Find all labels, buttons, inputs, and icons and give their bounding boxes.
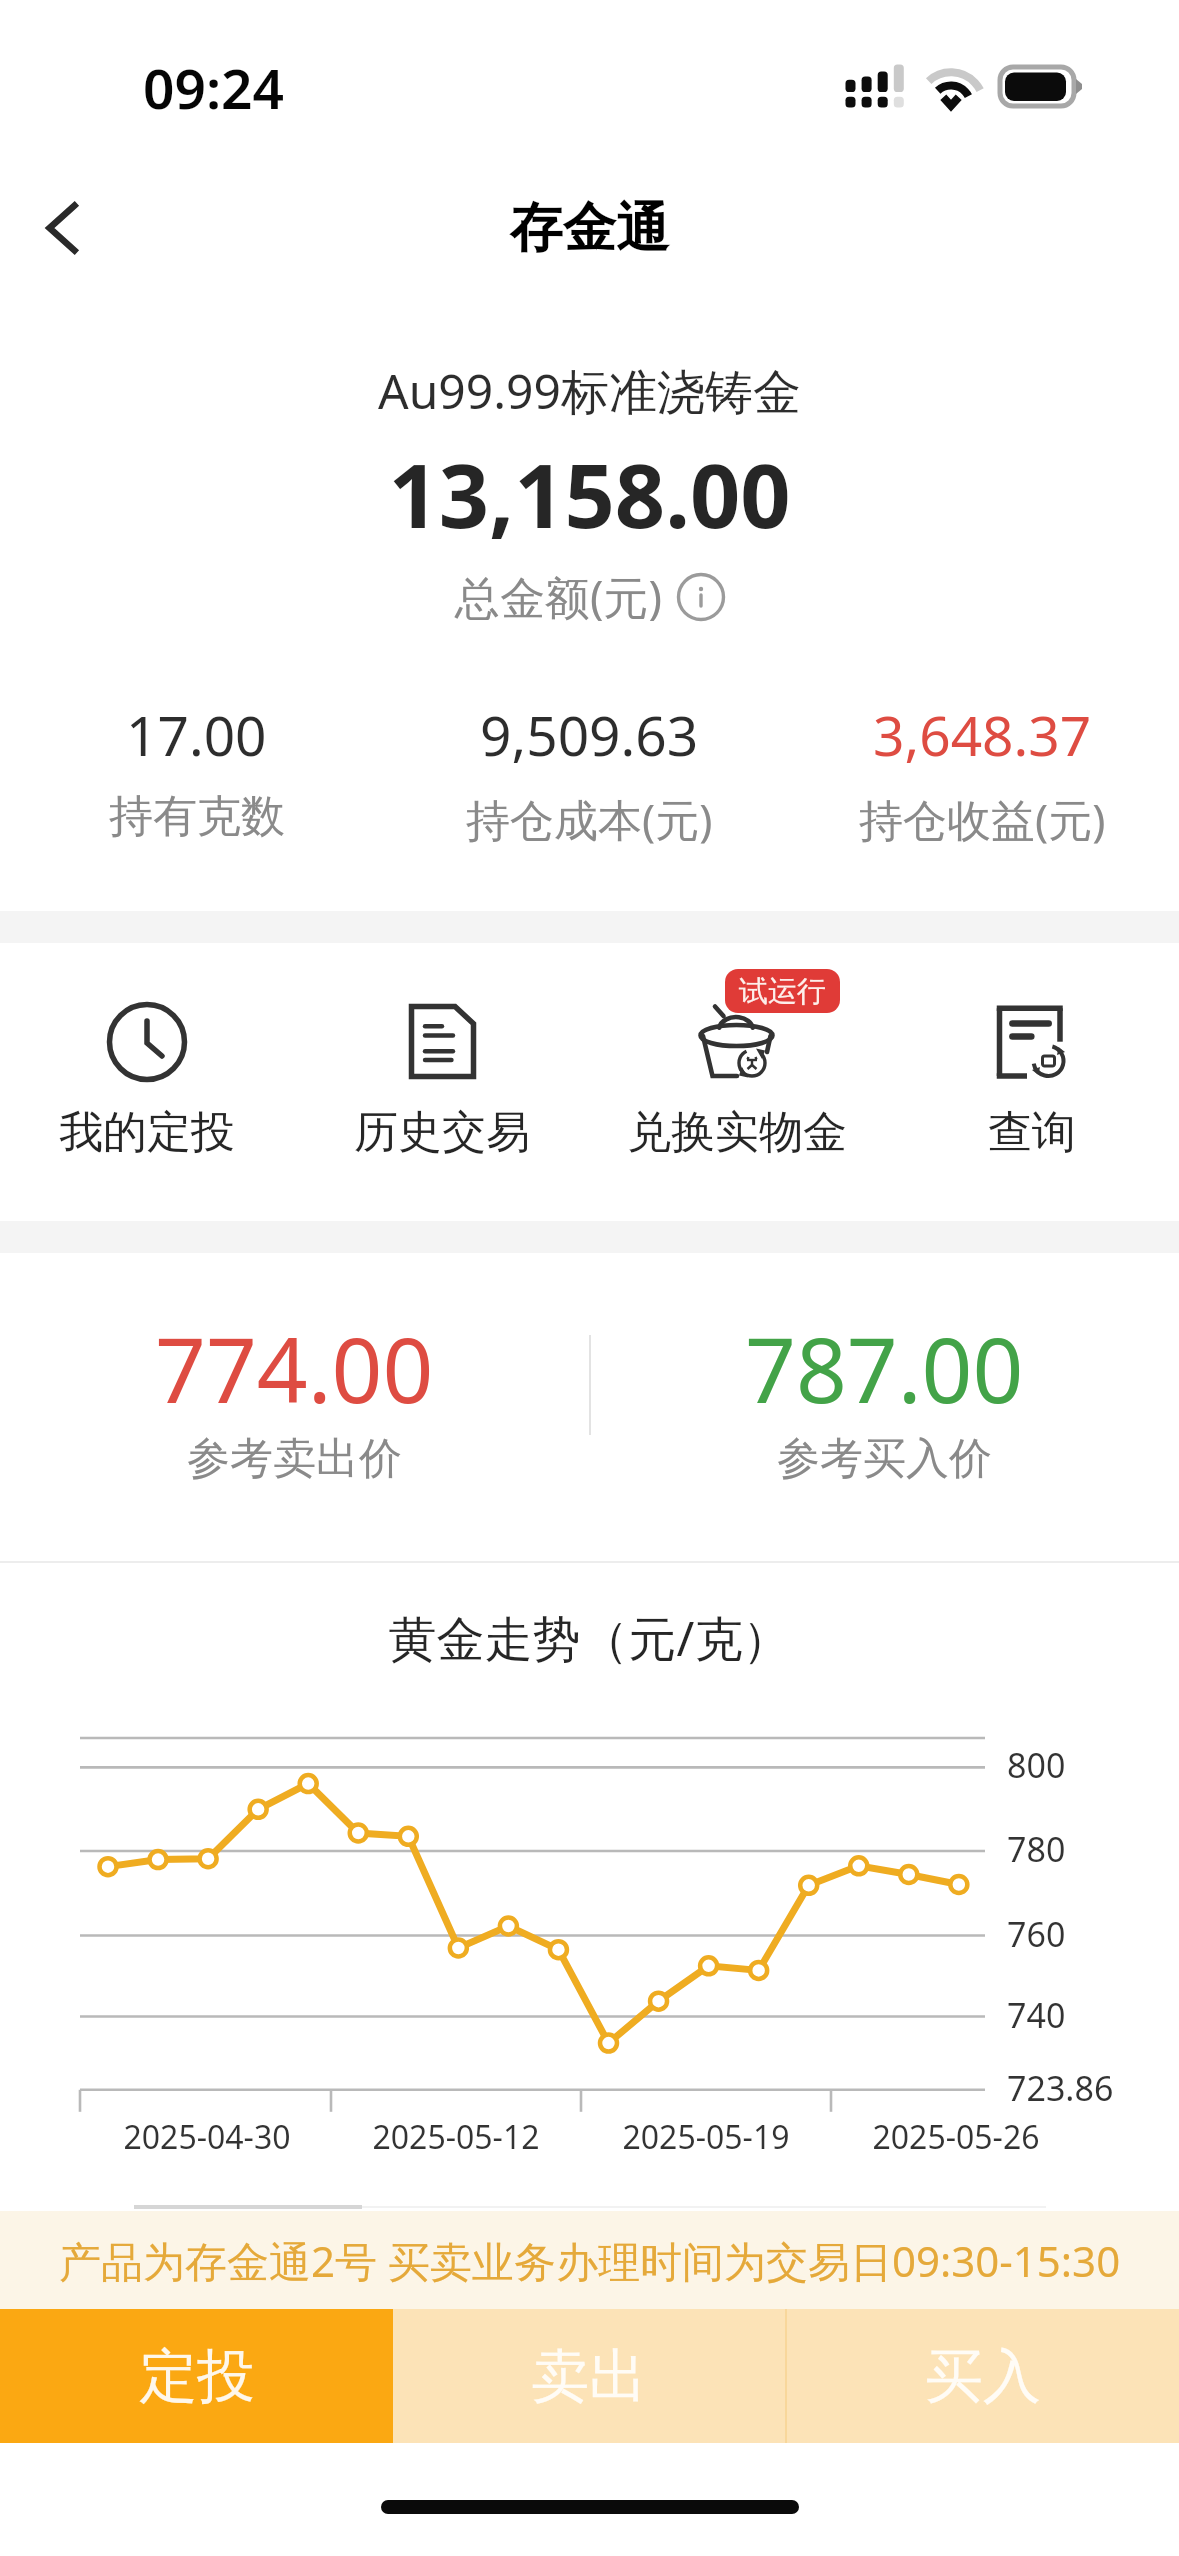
button[interactable]: 774.00 bbox=[0, 1253, 589, 1561]
staticText: 2025-05-19 bbox=[596, 2115, 816, 2159]
staticText: 持仓成本(元) bbox=[466, 789, 713, 849]
staticText: 2025-05-12 bbox=[346, 2115, 566, 2159]
staticText: 试运行 bbox=[739, 973, 826, 1010]
button[interactable]: Back bbox=[13, 179, 111, 277]
staticText: 买入 bbox=[925, 2340, 1041, 2413]
staticText: 760 bbox=[1007, 1911, 1066, 1957]
button[interactable]: 历史交易 bbox=[294, 943, 589, 1221]
staticText: 2025-04-30 bbox=[97, 2115, 317, 2159]
staticText: 740 bbox=[1007, 1992, 1066, 2038]
button[interactable]: 试运行 bbox=[589, 943, 884, 1221]
staticText: 黄金走势（元/克） bbox=[0, 1605, 1179, 1671]
button[interactable]: 买入 bbox=[787, 2309, 1179, 2443]
staticText: 持仓收益(元) bbox=[859, 789, 1106, 849]
staticText: 持有克数 bbox=[109, 789, 285, 844]
button[interactable]: 定投 bbox=[0, 2309, 393, 2443]
staticText: 产品为存金通2号 买卖业务办理时间为交易日09:30-15:30 bbox=[59, 2232, 1121, 2289]
button[interactable]: 卖出 bbox=[393, 2309, 785, 2443]
staticText: 定投 bbox=[139, 2340, 255, 2413]
staticText: Au99.99标准浇铸金 bbox=[0, 358, 1179, 424]
staticText: 13,158.00 bbox=[0, 434, 1179, 554]
button[interactable]: 787.00 bbox=[589, 1253, 1179, 1561]
staticText: 我的定投 bbox=[59, 1105, 235, 1160]
staticText: 参考买入价 bbox=[777, 1432, 992, 1486]
button[interactable]: 查询 bbox=[884, 943, 1179, 1221]
staticText: 参考卖出价 bbox=[187, 1432, 402, 1486]
staticText: 9,509.63 bbox=[480, 697, 699, 772]
staticText: 774.00 bbox=[155, 1308, 434, 1429]
staticText: 卖出 bbox=[531, 2340, 647, 2413]
staticText: 3,648.37 bbox=[873, 697, 1092, 772]
staticText: 存金通 bbox=[510, 195, 669, 262]
staticText: 查询 bbox=[988, 1105, 1076, 1160]
staticText: 历史交易 bbox=[354, 1105, 530, 1160]
staticText: 780 bbox=[1007, 1826, 1066, 1872]
button[interactable]: 我的定投 bbox=[0, 943, 294, 1221]
staticText: 787.00 bbox=[745, 1308, 1024, 1429]
staticText: 723.86 bbox=[1007, 2065, 1114, 2111]
staticText: 总金额(元) bbox=[455, 566, 663, 627]
staticText: 17.00 bbox=[126, 697, 267, 772]
staticText: 800 bbox=[1007, 1742, 1066, 1788]
staticText: 09:24 bbox=[143, 50, 285, 125]
staticText: 兑换实物金 bbox=[627, 1105, 847, 1160]
staticText: 2025-05-26 bbox=[846, 2115, 1066, 2159]
